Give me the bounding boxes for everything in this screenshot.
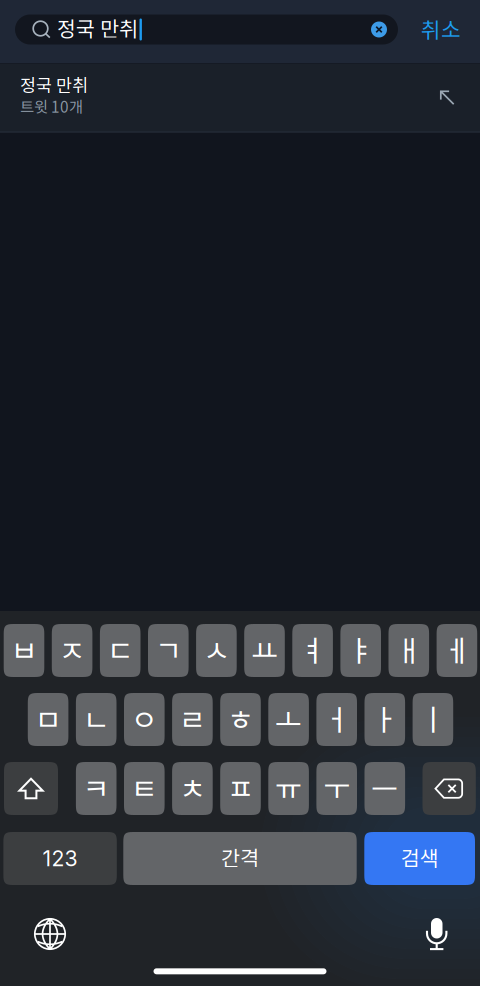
staticText: 취소 bbox=[421, 13, 461, 44]
button[interactable]: ㅇ bbox=[124, 693, 165, 746]
staticText: 간격 bbox=[221, 842, 259, 872]
button[interactable]: Delete bbox=[422, 762, 476, 815]
button[interactable]: Shift bbox=[4, 762, 58, 815]
staticText: ㅗ bbox=[275, 697, 302, 739]
staticText: ㅊ bbox=[179, 766, 206, 808]
button[interactable]: ㄴ bbox=[76, 693, 116, 746]
staticText: ㅏ bbox=[371, 697, 398, 739]
button[interactable]: ㅕ bbox=[292, 624, 333, 677]
staticText: 트윗 10개 bbox=[20, 95, 83, 117]
button[interactable]: ㄷ bbox=[100, 624, 140, 677]
button[interactable]: ㅈ bbox=[52, 624, 92, 677]
button[interactable]: ㅡ bbox=[364, 762, 405, 815]
button[interactable]: ㅛ bbox=[244, 624, 285, 677]
staticText: ㅓ bbox=[323, 697, 350, 739]
staticText: ㅐ bbox=[395, 628, 422, 670]
button[interactable]: ㅗ bbox=[268, 693, 309, 746]
button[interactable]: Dictation bbox=[415, 912, 459, 956]
button[interactable]: 정국 만취 bbox=[0, 63, 480, 132]
button[interactable]: 간격 bbox=[123, 832, 357, 885]
staticText: ㅕ bbox=[299, 628, 326, 670]
staticText: ㅍ bbox=[227, 766, 254, 808]
button[interactable]: ㅍ bbox=[220, 762, 261, 815]
button[interactable]: ㅅ bbox=[196, 624, 237, 677]
button[interactable]: ㅋ bbox=[76, 762, 116, 815]
button[interactable]: ㅑ bbox=[340, 624, 381, 677]
button[interactable]: ㅁ bbox=[28, 693, 68, 746]
staticText: 정국 만취 bbox=[20, 72, 88, 97]
button[interactable]: ㅓ bbox=[316, 693, 357, 746]
staticText: ㄹ bbox=[179, 697, 206, 739]
button[interactable]: ㅐ bbox=[388, 624, 429, 677]
staticText: ㅛ bbox=[251, 628, 278, 670]
button[interactable]: Next keyboard bbox=[28, 912, 72, 956]
staticText: ㅇ bbox=[131, 697, 158, 739]
button[interactable]: ㅣ bbox=[413, 693, 453, 746]
staticText: ㄱ bbox=[155, 628, 182, 670]
staticText: ㅑ bbox=[347, 628, 374, 670]
staticText: ㅈ bbox=[59, 628, 86, 670]
button[interactable]: ㄱ bbox=[148, 624, 189, 677]
staticText: ㅂ bbox=[10, 628, 37, 670]
staticText: ㅣ bbox=[419, 697, 446, 739]
staticText: ㅡ bbox=[371, 766, 398, 808]
button[interactable]: Clear search text bbox=[364, 14, 398, 44]
button[interactable]: 검색 bbox=[364, 832, 475, 885]
staticText: ㅁ bbox=[35, 697, 62, 739]
button[interactable]: ㅔ bbox=[437, 624, 477, 677]
staticText: ㅎ bbox=[227, 697, 254, 739]
button[interactable]: ㅏ bbox=[364, 693, 405, 746]
staticText: ㅔ bbox=[443, 628, 470, 670]
button[interactable]: ㅂ bbox=[4, 624, 44, 677]
staticText: ㄴ bbox=[83, 697, 110, 739]
staticText: ㄷ bbox=[107, 628, 134, 670]
staticText: 123 bbox=[43, 846, 78, 871]
staticText: ㅜ bbox=[323, 766, 350, 808]
staticText: ㅋ bbox=[83, 766, 110, 808]
button[interactable]: 123 bbox=[3, 832, 117, 885]
staticText: ㅅ bbox=[203, 628, 230, 670]
button[interactable]: ㄹ bbox=[172, 693, 213, 746]
button[interactable]: ㅎ bbox=[220, 693, 261, 746]
staticText: 정국 만취 bbox=[57, 12, 138, 42]
staticText: ㅠ bbox=[275, 766, 302, 808]
button[interactable]: ㅌ bbox=[124, 762, 165, 815]
button[interactable]: 취소 bbox=[404, 8, 478, 52]
button[interactable]: ㅜ bbox=[316, 762, 357, 815]
button[interactable]: ㅊ bbox=[172, 762, 213, 815]
staticText: 검색 bbox=[401, 842, 439, 872]
staticText: ㅌ bbox=[131, 766, 158, 808]
button[interactable]: ㅠ bbox=[268, 762, 309, 815]
